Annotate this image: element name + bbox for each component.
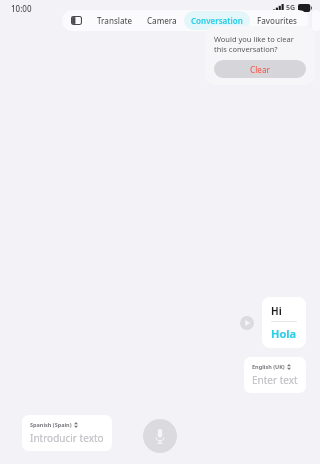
- button[interactable]: Clear: [214, 60, 306, 78]
- staticText: 5G: [286, 3, 296, 13]
- staticText: Favourites: [257, 15, 298, 26]
- staticText: English (UK): [252, 363, 285, 370]
- button[interactable]: Conversation: [184, 11, 250, 30]
- button[interactable]: Spanish (Spain): [22, 415, 112, 451]
- button[interactable]: Favourites: [250, 10, 305, 31]
- staticText: Translate: [97, 15, 133, 26]
- button[interactable]: Play: [240, 316, 254, 330]
- staticText: Would you like to clear this conversatio…: [214, 34, 306, 54]
- staticText: Camera: [147, 15, 177, 26]
- staticText: 10:00: [11, 3, 32, 14]
- button[interactable]: Hi: [262, 297, 306, 348]
- staticText: Spanish (Spain): [30, 421, 72, 428]
- button[interactable]: English (UK): [244, 357, 306, 393]
- staticText: Hola: [271, 326, 297, 341]
- button[interactable]: Microphone: [143, 419, 177, 453]
- button[interactable]: Sidebar: [62, 10, 90, 31]
- staticText: Conversation: [191, 15, 243, 26]
- staticText: Clear: [250, 64, 270, 75]
- button[interactable]: Camera: [140, 10, 184, 31]
- staticText: Introducir texto: [30, 431, 104, 445]
- staticText: Enter text: [252, 373, 298, 387]
- button[interactable]: Translate: [90, 10, 140, 31]
- staticText: Hi: [271, 304, 282, 318]
